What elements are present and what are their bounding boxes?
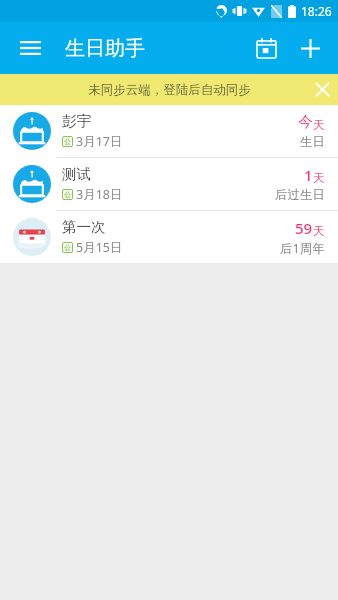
- staticText: 天: [313, 224, 325, 238]
- staticText: 生日: [300, 134, 325, 150]
- staticText: 3月18日: [76, 186, 123, 203]
- staticText: 生日助手: [65, 36, 145, 61]
- staticText: 1: [304, 165, 313, 185]
- button[interactable]: 测试: [0, 158, 338, 210]
- staticText: 59: [295, 218, 313, 238]
- staticText: 今: [298, 113, 313, 132]
- button[interactable]: Add birthday: [288, 26, 332, 70]
- staticText: 未同步云端，登陆后自动同步: [88, 82, 251, 98]
- button[interactable]: 第一次: [0, 211, 338, 263]
- staticText: 公: [64, 243, 71, 252]
- button[interactable]: Calendar view: [244, 26, 288, 70]
- button[interactable]: Open navigation menu: [12, 30, 48, 66]
- staticText: 天: [313, 171, 325, 185]
- button[interactable]: 彭宇: [0, 105, 338, 157]
- staticText: 5月15日: [76, 239, 123, 256]
- staticText: 后1周年: [280, 240, 325, 257]
- staticText: 18:26: [301, 3, 332, 19]
- staticText: 测试: [62, 165, 91, 183]
- staticText: 彭宇: [62, 112, 91, 130]
- button[interactable]: Dismiss sync notice: [307, 74, 338, 105]
- staticText: 第一次: [62, 218, 106, 236]
- staticText: 公: [64, 190, 71, 199]
- staticText: 3月17日: [76, 133, 123, 150]
- staticText: 天: [313, 118, 325, 132]
- staticText: 后过生日: [275, 187, 325, 203]
- staticText: 公: [64, 137, 71, 146]
